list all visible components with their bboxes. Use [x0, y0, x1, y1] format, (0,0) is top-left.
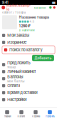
staticText: Профиль	[45, 115, 54, 118]
staticText: 9:41	[2, 1, 8, 4]
button[interactable]: Мои заказы	[0, 32, 57, 39]
button[interactable]: Профиль	[43, 108, 57, 120]
staticText: 4.5	[29, 20, 34, 23]
staticText: Каталог / Товары	[2, 11, 26, 14]
staticText: Личный кабинет	[7, 69, 36, 74]
button[interactable]: Избранное	[0, 39, 57, 46]
staticText: market.example	[7, 4, 31, 11]
staticText: 1 290 ₽	[19, 24, 31, 28]
staticText: Избранное	[7, 40, 26, 45]
button[interactable]: Предложить	[0, 61, 57, 68]
button[interactable]: Корзина	[28, 108, 43, 120]
staticText: Добавить	[34, 56, 51, 60]
staticText: Время доставки	[7, 90, 37, 95]
staticText: товар	[7, 65, 16, 69]
button[interactable]: Баллоны	[0, 75, 57, 82]
button[interactable]: Время доставки	[0, 89, 57, 96]
button[interactable]: Главная	[0, 108, 14, 120]
button[interactable]: Личный кабинет	[0, 68, 57, 75]
staticText: Мои заказы	[7, 33, 29, 38]
button[interactable]: Поиск по каталогу	[0, 46, 57, 54]
staticText: Каталог	[17, 115, 25, 118]
staticText: в наличии	[19, 29, 35, 32]
button[interactable]: Добавить	[32, 55, 54, 61]
staticText: Название товара	[19, 15, 49, 19]
staticText: ▮▮▮	[52, 1, 55, 4]
staticText: Баллоны	[7, 74, 23, 79]
staticText: каталог	[34, 6, 46, 9]
staticText: Поиск по каталогу	[9, 47, 42, 52]
staticText: Оплата	[7, 83, 20, 88]
staticText: мои баллы	[7, 79, 24, 83]
staticText: Главная	[4, 115, 11, 118]
button[interactable]: Каталог	[14, 108, 28, 120]
staticText: Настройки	[7, 97, 26, 102]
button[interactable]: Оплата	[0, 82, 57, 89]
button[interactable]: Настройки	[0, 96, 57, 103]
staticText: Корзина	[32, 115, 40, 118]
staticText: Предложить	[7, 60, 30, 65]
